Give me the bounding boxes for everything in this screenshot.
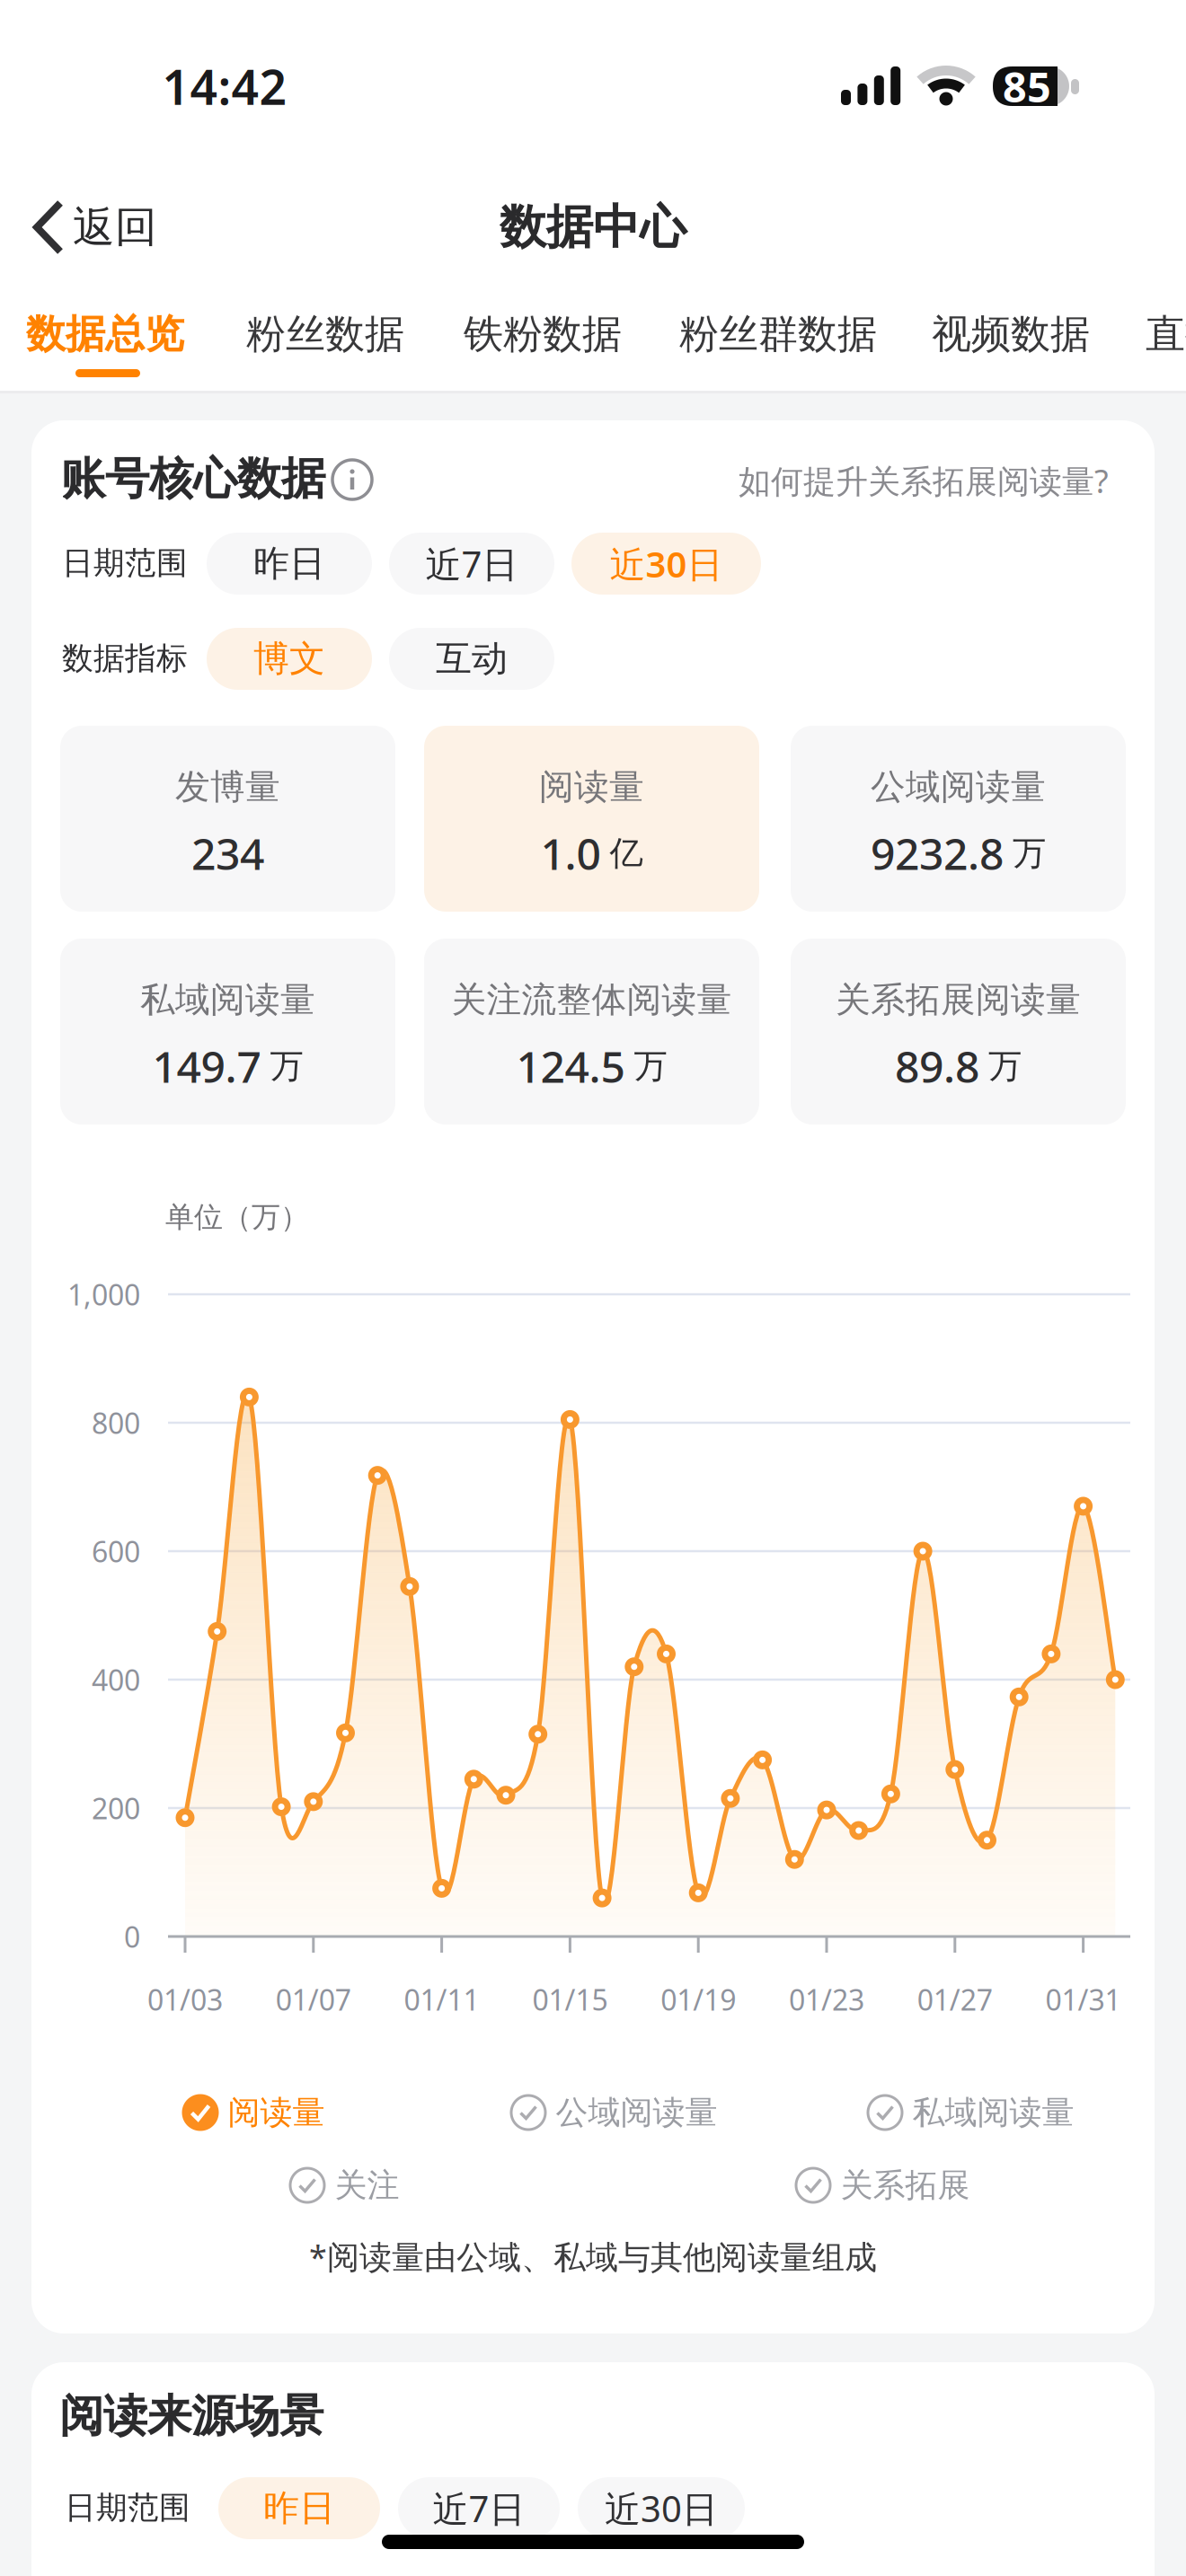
staticText: 01/31 <box>1045 1980 1121 2018</box>
staticText: 万 <box>988 1046 1022 1087</box>
button[interactable]: 关系拓展 <box>795 2157 970 2213</box>
staticText: 400 <box>92 1661 140 1699</box>
staticText: 200 <box>92 1789 140 1827</box>
button[interactable]: 直播数据 <box>1146 306 1186 362</box>
button[interactable]: 昨日 <box>218 2477 380 2539</box>
staticText: 万 <box>634 1046 667 1087</box>
staticText: 14:42 <box>162 54 287 118</box>
staticText: 公域阅读量 <box>556 2093 717 2132</box>
button[interactable]: 博文 <box>207 628 372 690</box>
staticText: 发博量 <box>175 766 280 808</box>
button[interactable]: 发博量 <box>60 726 395 912</box>
staticText: 数据指标 <box>62 639 188 678</box>
staticText: 铁粉数据 <box>464 310 622 358</box>
staticText: 私域阅读量 <box>912 2093 1074 2132</box>
staticText: 89.8 <box>895 1037 979 1095</box>
staticText: 日期范围 <box>62 544 188 582</box>
staticText: 直播数据 <box>1146 310 1186 358</box>
staticText: 互动 <box>436 637 508 681</box>
staticText: 600 <box>92 1532 140 1570</box>
button[interactable]: 公域阅读量 <box>510 2085 717 2140</box>
staticText: 近30日 <box>605 2484 718 2532</box>
staticText: 01/19 <box>661 1980 736 2018</box>
staticText: 85 <box>1003 58 1051 114</box>
staticText: 9232.8 <box>871 825 1004 882</box>
staticText: 博文 <box>253 637 325 681</box>
staticText: 01/11 <box>404 1980 479 2018</box>
staticText: 昨日 <box>263 2486 335 2530</box>
staticText: 近7日 <box>433 2484 525 2532</box>
staticText: *阅读量由公域、私域与其他阅读量组成 <box>309 2235 877 2278</box>
staticText: 昨日 <box>253 542 325 586</box>
staticText: 阅读量 <box>228 2093 325 2132</box>
button[interactable]: 铁粉数据 <box>426 306 659 362</box>
staticText: 149.7 <box>152 1037 261 1095</box>
staticText: 234 <box>191 825 264 882</box>
button[interactable]: 粉丝数据 <box>208 306 442 362</box>
button[interactable]: 公域阅读量 <box>791 726 1126 912</box>
staticText: 800 <box>92 1404 140 1442</box>
staticText: 账号核心数据 <box>61 452 325 506</box>
staticText: 阅读量 <box>539 766 644 808</box>
button[interactable]: 粉丝群数据 <box>661 306 895 362</box>
button[interactable]: 私域阅读量 <box>60 939 395 1125</box>
button[interactable]: 私域阅读量 <box>867 2085 1074 2140</box>
staticText: 数据总览 <box>26 310 184 358</box>
staticText: 万 <box>270 1046 303 1087</box>
staticText: 公域阅读量 <box>871 766 1046 808</box>
staticText: 近30日 <box>610 540 723 587</box>
staticText: 关注 <box>335 2165 399 2205</box>
button[interactable]: 关系拓展阅读量 <box>791 939 1126 1125</box>
button[interactable]: 近30日 <box>578 2477 745 2539</box>
staticText: 日期范围 <box>65 2489 190 2527</box>
staticText: 关注流整体阅读量 <box>451 978 732 1021</box>
staticText: 124.5 <box>516 1037 625 1095</box>
staticText: 关系拓展阅读量 <box>836 978 1081 1021</box>
button[interactable]: 关注 <box>289 2157 399 2213</box>
staticText: 万 <box>1013 833 1046 874</box>
staticText: 01/27 <box>917 1980 993 2018</box>
button[interactable]: 阅读量 <box>182 2085 325 2140</box>
staticText: 阅读来源场景 <box>59 2389 323 2443</box>
staticText: 视频数据 <box>932 310 1090 358</box>
staticText: 关系拓展 <box>841 2165 970 2205</box>
button[interactable]: 关注流整体阅读量 <box>424 939 759 1125</box>
button[interactable]: 数据总览 <box>0 306 222 362</box>
staticText: 如何提升关系拓展阅读量? <box>739 459 1109 502</box>
staticText: 近7日 <box>425 540 518 587</box>
button[interactable]: 如何提升关系拓展阅读量? <box>552 455 1109 506</box>
staticText: 私域阅读量 <box>140 978 315 1021</box>
button[interactable]: 返回 <box>33 200 186 254</box>
button[interactable]: 近30日 <box>571 533 761 595</box>
staticText: 01/03 <box>147 1980 223 2018</box>
staticText: 亿 <box>610 833 643 874</box>
button[interactable]: 互动 <box>389 628 554 690</box>
staticText: 01/15 <box>532 1980 608 2018</box>
staticText: 01/23 <box>789 1980 864 2018</box>
staticText: 1.0 <box>540 825 601 882</box>
button[interactable] <box>332 460 372 499</box>
staticText: 0 <box>124 1917 140 1956</box>
staticText: 单位（万） <box>165 1199 309 1235</box>
button[interactable]: 视频数据 <box>894 306 1128 362</box>
button[interactable]: 昨日 <box>207 533 372 595</box>
button[interactable]: 近7日 <box>398 2477 560 2539</box>
staticText: 粉丝群数据 <box>679 310 877 358</box>
button[interactable]: 近7日 <box>389 533 554 595</box>
staticText: 1,000 <box>67 1275 140 1313</box>
staticText: 数据中心 <box>500 199 686 256</box>
staticText: 粉丝数据 <box>246 310 404 358</box>
staticText: 返回 <box>73 201 157 253</box>
button[interactable]: 阅读量 <box>424 726 759 912</box>
staticText: 01/07 <box>276 1980 351 2018</box>
